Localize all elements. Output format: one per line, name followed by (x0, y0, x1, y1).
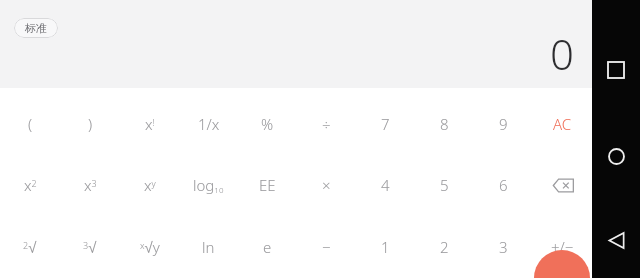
button[interactable]: % (238, 93, 297, 154)
staticText: × (322, 175, 331, 195)
button[interactable]: 5 (415, 154, 474, 216)
button[interactable]: Delete (533, 154, 592, 216)
staticText: % (261, 114, 274, 134)
staticText: 6 (499, 175, 508, 195)
button[interactable]: x! (120, 93, 179, 154)
button[interactable]: Square root (0, 216, 60, 278)
button[interactable]: 9 (474, 93, 533, 154)
staticText: 2 (440, 237, 449, 257)
button[interactable]: Cube root (60, 216, 120, 278)
staticText: 3 (499, 237, 508, 257)
button[interactable]: +/− (533, 216, 592, 278)
button[interactable]: 8 (415, 93, 474, 154)
staticText: +/− (551, 237, 574, 257)
button[interactable]: x2 (0, 154, 60, 216)
button[interactable]: 6 (474, 154, 533, 216)
staticText: 9 (499, 114, 508, 134)
button[interactable]: xy (120, 154, 179, 216)
button[interactable]: 2 (415, 216, 474, 278)
button[interactable]: e (238, 216, 297, 278)
button[interactable]: ) (60, 93, 120, 154)
staticText: EE (259, 175, 276, 195)
button[interactable]: ÷ (297, 93, 356, 154)
staticText: 7 (381, 114, 390, 134)
staticText: 5 (440, 175, 449, 195)
button[interactable]: 7 (356, 93, 415, 154)
staticText: 1/x (198, 114, 220, 134)
button[interactable]: 1 (356, 216, 415, 278)
button[interactable]: 3 (474, 216, 533, 278)
staticText: x√y (140, 237, 160, 257)
button[interactable]: × (297, 154, 356, 216)
staticText: AC (553, 114, 572, 134)
button[interactable]: AC (533, 93, 592, 154)
button[interactable]: Home (598, 138, 634, 174)
button[interactable]: EE (238, 154, 297, 216)
staticText: log10 (193, 175, 224, 196)
staticText: ln (202, 237, 215, 257)
staticText: 0 (550, 25, 574, 82)
staticText: 3√ (83, 239, 97, 256)
button[interactable]: 4 (356, 154, 415, 216)
button[interactable]: Back (598, 222, 634, 258)
button[interactable]: Equals (534, 250, 590, 278)
staticText: x! (145, 114, 155, 134)
button[interactable]: 标准 (14, 18, 58, 38)
staticText: ÷ (322, 114, 331, 134)
staticText: 4 (381, 175, 390, 195)
staticText: xy (144, 175, 156, 195)
staticText: 8 (440, 114, 449, 134)
button[interactable]: ( (0, 93, 60, 154)
button[interactable]: Recents (598, 52, 634, 88)
staticText: x3 (84, 175, 97, 195)
staticText: ( (28, 114, 33, 134)
button[interactable]: ln (179, 216, 238, 278)
button[interactable]: − (297, 216, 356, 278)
button[interactable]: log10 (179, 154, 238, 216)
staticText: e (263, 237, 272, 257)
staticText: ) (88, 114, 93, 134)
staticText: x2 (24, 175, 37, 195)
button[interactable]: Nth root (120, 216, 179, 278)
staticText: − (322, 237, 331, 257)
button[interactable]: x3 (60, 154, 120, 216)
button[interactable]: 1/x (179, 93, 238, 154)
staticText: 标准 (25, 21, 47, 35)
staticText: 1 (381, 237, 390, 257)
staticText: 2√ (23, 239, 37, 256)
